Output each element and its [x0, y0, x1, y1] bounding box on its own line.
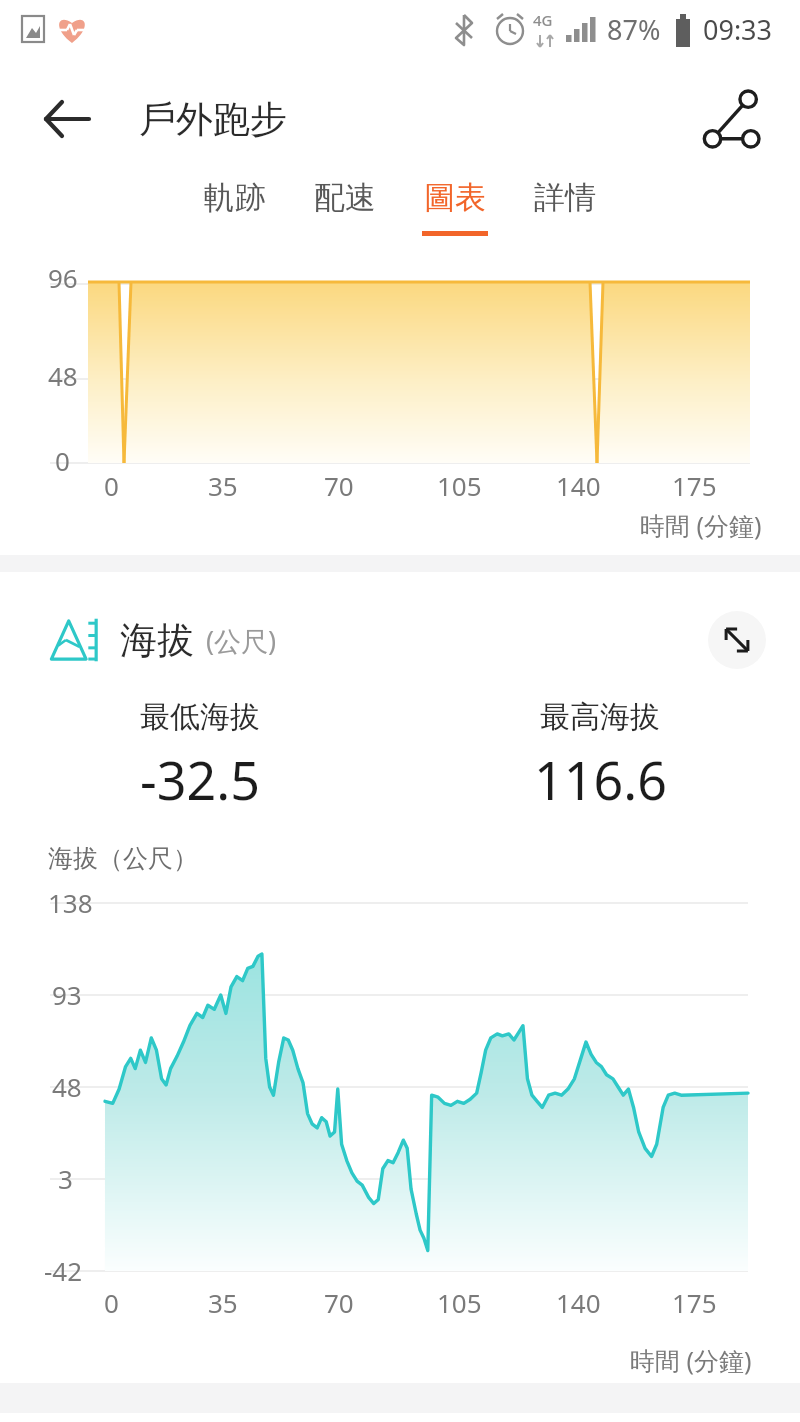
staticText: 138 [48, 885, 93, 920]
staticText: 最高海拔 [540, 698, 660, 736]
staticText: 圖表 [424, 178, 486, 217]
staticText: 175 [672, 468, 717, 503]
staticText: 48 [48, 358, 78, 393]
staticText: 70 [324, 1285, 354, 1320]
staticText: 140 [556, 1285, 601, 1320]
staticText: 戶外跑步 [139, 96, 287, 143]
staticText: (公尺) [206, 622, 277, 659]
staticText: 35 [208, 1285, 238, 1320]
button[interactable]: 圖表 [400, 178, 510, 236]
staticText: 105 [437, 1285, 482, 1320]
staticText: 35 [208, 468, 238, 503]
staticText: 0 [55, 443, 70, 478]
button[interactable]: Back [36, 88, 98, 150]
button[interactable]: 詳情 [510, 178, 620, 231]
staticText: 最低海拔 [140, 698, 260, 736]
staticText: 09:33 [703, 11, 773, 48]
button[interactable]: Expand chart [708, 611, 766, 669]
staticText: 87% [607, 11, 661, 48]
staticText: 116.6 [534, 744, 667, 815]
staticText: -42 [44, 1253, 83, 1288]
staticText: 96 [48, 260, 78, 295]
staticText: 70 [324, 468, 354, 503]
staticText: 4G [533, 10, 553, 30]
staticText: 0 [104, 468, 119, 503]
staticText: 時間 (分鐘) [630, 1343, 752, 1377]
staticText: 105 [437, 468, 482, 503]
staticText: 軌跡 [204, 178, 266, 217]
staticText: 3 [58, 1161, 73, 1196]
staticText: 詳情 [534, 178, 596, 217]
staticText: 93 [52, 977, 82, 1012]
staticText: 海拔（公尺） [48, 843, 198, 874]
staticText: 175 [672, 1285, 717, 1320]
staticText: -32.5 [140, 744, 260, 815]
staticText: 海拔 [120, 617, 194, 664]
button[interactable]: Share [698, 86, 764, 152]
staticText: 140 [556, 468, 601, 503]
staticText: 配速 [314, 178, 376, 217]
staticText: 0 [104, 1285, 119, 1320]
staticText: 48 [52, 1069, 82, 1104]
staticText: 時間 (分鐘) [640, 508, 762, 542]
button[interactable]: 配速 [290, 178, 400, 231]
button[interactable]: 軌跡 [180, 178, 290, 231]
